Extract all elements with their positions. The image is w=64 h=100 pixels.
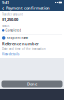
staticText: $1,250.00 bbox=[2, 17, 18, 22]
staticText: Status bbox=[2, 24, 9, 28]
staticText: ‹ bbox=[2, 4, 4, 12]
button[interactable]: View details bbox=[2, 51, 19, 56]
staticText: Date and time of the transaction bbox=[2, 47, 46, 51]
staticText: Payment confirmation bbox=[6, 5, 50, 11]
staticText: Transfer amount bbox=[2, 13, 23, 16]
staticText: Completed bbox=[5, 29, 21, 32]
staticText: Done bbox=[27, 81, 37, 87]
button[interactable]: Back bbox=[1, 5, 4, 10]
staticText: 9:41 bbox=[2, 0, 9, 5]
button[interactable]: Done bbox=[1, 80, 62, 87]
staticText: View details bbox=[2, 52, 19, 56]
staticText: Recipient name bbox=[7, 36, 29, 40]
staticText: Reference number bbox=[2, 41, 39, 46]
